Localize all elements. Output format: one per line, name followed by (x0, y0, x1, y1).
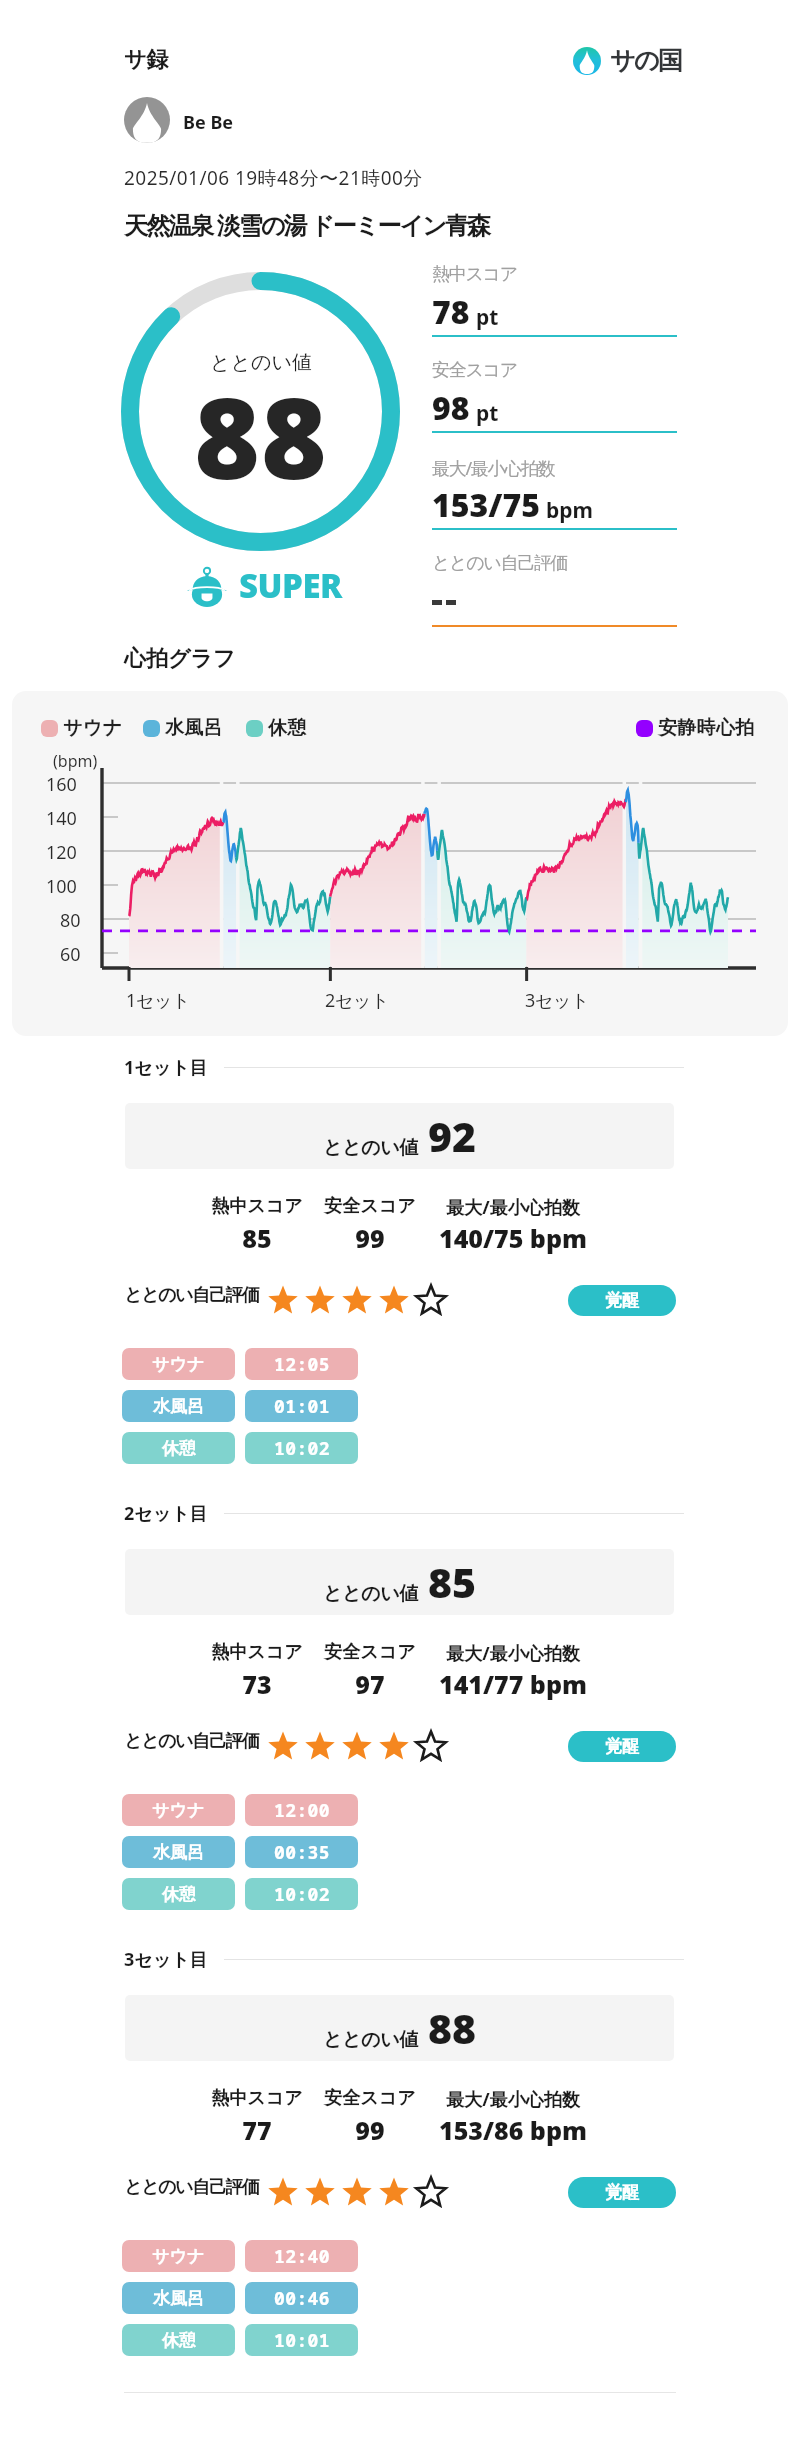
staticText: 99 (355, 1221, 385, 1255)
staticText: 120 (46, 840, 77, 865)
staticText: サウナ (63, 716, 123, 740)
staticText: 休憩 (162, 1884, 196, 1905)
staticText: サウナ (152, 2246, 205, 2267)
staticText: 12:00 (274, 1798, 330, 1823)
staticText: 98 (432, 386, 470, 430)
staticText: 78 (432, 290, 470, 334)
staticText: 3セット (525, 988, 589, 1013)
staticText: 88 (428, 2000, 477, 2056)
staticText: 最大/最小心拍数 (446, 1641, 580, 1666)
staticText: 最大/最小心拍数 (432, 456, 555, 481)
staticText: 覚醒 (605, 1290, 639, 1311)
button[interactable]: サの国 ロゴ (573, 45, 682, 76)
staticText: ととのい値 (210, 350, 312, 375)
staticText: 2025/01/06 19時48分〜21時00分 (124, 165, 423, 191)
staticText: 00:46 (274, 2286, 330, 2311)
staticText: 12:40 (274, 2244, 330, 2269)
staticText: ととのい自己評価 (124, 1284, 259, 1307)
staticText: 85 (242, 1221, 272, 1255)
staticText: 熱中スコア (211, 1195, 303, 1218)
staticText: ととのい自己評価 (432, 552, 568, 575)
staticText: 覚醒 (605, 1736, 639, 1757)
staticText: 休憩 (268, 716, 307, 740)
staticText: 99 (355, 2113, 385, 2147)
staticText: 01:01 (274, 1394, 330, 1419)
staticText: 1セット (126, 988, 190, 1013)
staticText: 3セット目 (124, 1947, 208, 1972)
staticText: 安全スコア (432, 359, 517, 382)
staticText: 覚醒 (605, 2182, 639, 2203)
staticText: 140 (46, 806, 77, 831)
staticText: 1セット目 (124, 1055, 208, 1080)
staticText: 60 (60, 942, 81, 967)
staticText: 熱中スコア (432, 263, 517, 286)
staticText: 最大/最小心拍数 (446, 1195, 580, 1220)
staticText: Be Be (183, 110, 234, 135)
staticText: 熱中スコア (211, 1641, 303, 1664)
button[interactable]: 覚醒 (568, 2177, 676, 2208)
staticText: 153/86 bpm (439, 2113, 587, 2147)
staticText: 最大/最小心拍数 (446, 2087, 580, 2112)
staticText: 安静時心拍 (658, 716, 755, 740)
staticText: 10:02 (274, 1882, 330, 1907)
staticText: 安全スコア (324, 2087, 416, 2110)
staticText: 心拍グラフ (124, 645, 236, 673)
staticText: ととのい値 (323, 1582, 418, 1606)
staticText: 水風呂 (153, 2288, 204, 2309)
staticText: サの国 (610, 45, 682, 76)
staticText: サウナ (152, 1354, 205, 1375)
staticText: 休憩 (162, 2330, 196, 2351)
staticText: 141/77 bpm (439, 1667, 587, 1701)
staticText: 水風呂 (153, 1396, 204, 1417)
staticText: 153/75 (432, 483, 540, 527)
staticText: サウナ (152, 1800, 205, 1821)
staticText: 12:05 (274, 1352, 330, 1377)
staticText: 92 (428, 1108, 477, 1164)
staticText: 安全スコア (324, 1195, 416, 1218)
staticText: 97 (355, 1667, 385, 1701)
staticText: ととのい自己評価 (124, 2176, 259, 2199)
staticText: ととのい値 (323, 2028, 418, 2052)
staticText: bpm (546, 496, 594, 525)
staticText: 水風呂 (165, 716, 223, 740)
staticText: 熱中スコア (211, 2087, 303, 2110)
staticText: 100 (46, 874, 77, 899)
staticText: 2セット目 (124, 1501, 208, 1526)
staticText: 2セット (325, 988, 389, 1013)
staticText: 80 (60, 908, 81, 933)
staticText: 10:02 (274, 1436, 330, 1461)
staticText: pt (476, 303, 499, 332)
staticText: (bpm) (53, 750, 98, 772)
button[interactable]: Be Be (124, 97, 234, 143)
staticText: ととのい自己評価 (124, 1730, 259, 1753)
staticText: 安全スコア (324, 1641, 416, 1664)
staticText: 水風呂 (153, 1842, 204, 1863)
staticText: ととのい値 (323, 1136, 418, 1160)
staticText: 85 (428, 1554, 477, 1610)
staticText: pt (476, 399, 499, 428)
staticText: 160 (46, 772, 77, 797)
button[interactable]: 覚醒 (568, 1731, 676, 1762)
staticText: 77 (242, 2113, 272, 2147)
staticText: 73 (242, 1667, 272, 1701)
button[interactable]: 覚醒 (568, 1285, 676, 1316)
staticText: SUPER (239, 563, 342, 608)
staticText: 88 (194, 359, 328, 512)
staticText: 天然温泉 淡雪の湯 ドーミーイン青森 (124, 208, 490, 241)
staticText: 休憩 (162, 1438, 196, 1459)
staticText: 00:35 (274, 1840, 330, 1865)
staticText: サ録 (124, 46, 169, 74)
staticText: 140/75 bpm (439, 1221, 587, 1255)
staticText: 10:01 (274, 2328, 330, 2353)
